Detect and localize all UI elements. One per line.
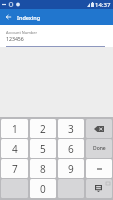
staticText: 4 (12, 142, 18, 156)
button[interactable]: 7 (1, 159, 28, 178)
button[interactable]: 4 (1, 139, 28, 158)
button[interactable]: 1 (1, 119, 28, 138)
button[interactable]: 5 (30, 139, 56, 158)
button[interactable]: Done (86, 139, 112, 158)
button[interactable]: 8 (30, 159, 56, 178)
staticText: Account Number (6, 30, 37, 35)
button[interactable]: 6 (58, 139, 84, 158)
button[interactable]: 3 (58, 119, 84, 138)
button[interactable]: 2 (30, 119, 56, 138)
staticText: 123456 (6, 35, 24, 42)
staticText: 7 (12, 162, 18, 176)
button[interactable]: - (86, 159, 112, 178)
button[interactable]: del (86, 119, 112, 138)
button[interactable]: Back (0, 9, 16, 25)
staticText: 9 (68, 162, 74, 176)
staticText: Indexing (17, 14, 41, 21)
button[interactable]: 9 (58, 159, 84, 178)
staticText: 5 (40, 142, 46, 156)
button[interactable]: 0 (30, 179, 56, 198)
staticText: Done (93, 145, 106, 152)
button[interactable]: kbd (86, 179, 112, 198)
staticText: 2 (40, 122, 46, 136)
staticText: 3 (68, 122, 74, 136)
staticText: 6 (68, 142, 74, 156)
staticText: 14:37 (95, 1, 111, 9)
staticText: 8 (40, 162, 46, 176)
staticText: 0 (40, 182, 46, 196)
staticText: 1 (12, 122, 18, 136)
